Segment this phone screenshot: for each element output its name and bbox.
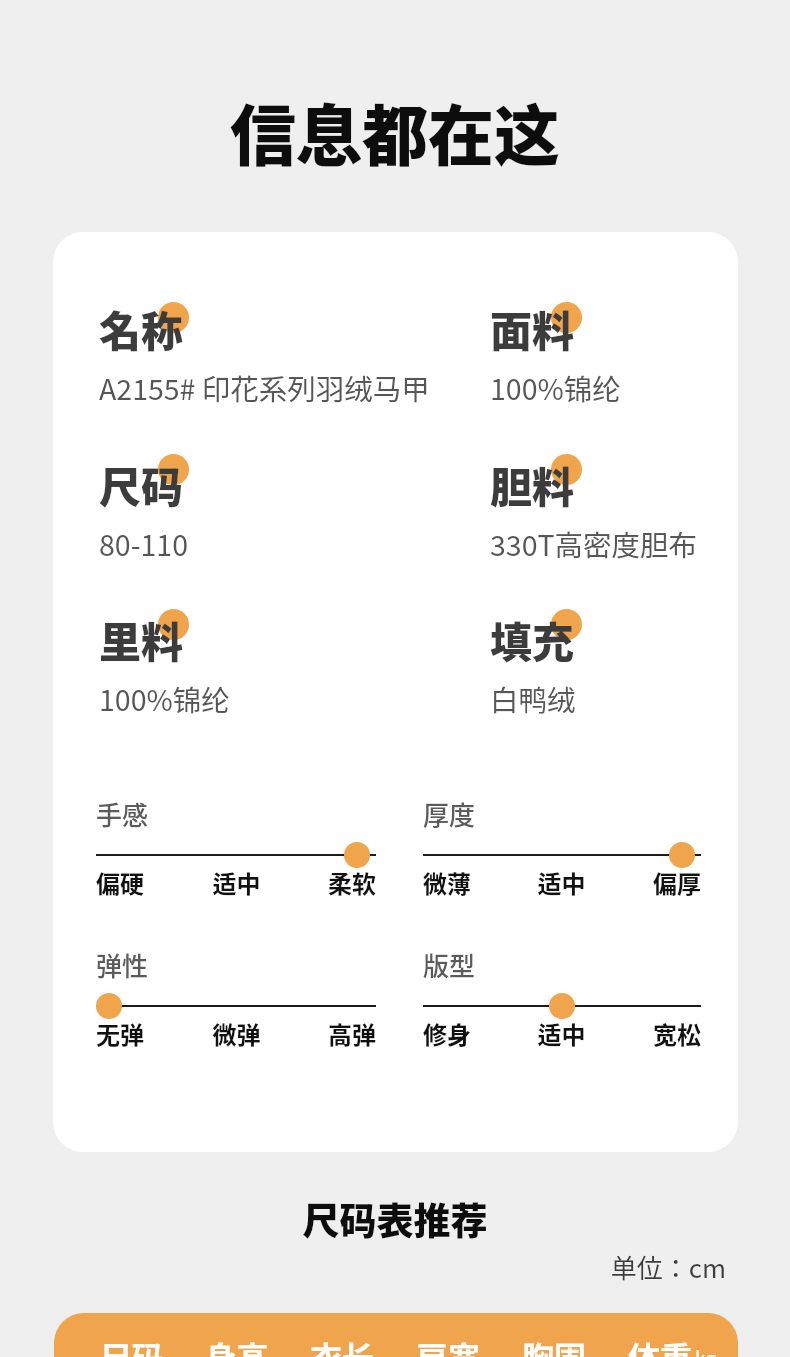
staticText: 适中: [515, 1016, 608, 1051]
staticText: 330T高密度胆布: [490, 523, 698, 564]
staticText: 版型: [423, 946, 476, 984]
staticText: 体重: [607, 1333, 713, 1357]
staticText: kg: [695, 1344, 716, 1357]
staticText: 修身: [423, 1016, 515, 1051]
staticText: 面料: [490, 298, 575, 359]
staticText: 尺码表推荐: [0, 1192, 790, 1246]
button[interactable]: 名称: [99, 298, 467, 406]
button[interactable]: 衣长: [289, 1313, 395, 1357]
staticText: 柔软: [283, 865, 376, 900]
staticText: 100%锦纶: [99, 678, 230, 719]
staticText: 里料: [99, 609, 184, 670]
staticText: 身高: [184, 1333, 289, 1357]
button[interactable]: 里料: [99, 609, 467, 717]
staticText: 名称: [99, 298, 184, 359]
button[interactable]: 体重: [607, 1313, 713, 1357]
button[interactable]: 手感: [96, 795, 376, 891]
staticText: 胆料: [490, 454, 575, 515]
button[interactable]: 弹性: [96, 991, 376, 1021]
staticText: A2155# 印花系列羽绒马甲: [99, 367, 430, 408]
staticText: 尺码: [99, 454, 184, 515]
button[interactable]: 胸围: [501, 1313, 607, 1357]
staticText: 80-110: [99, 523, 188, 564]
button[interactable]: 厚度: [423, 795, 701, 891]
button[interactable]: 身高: [184, 1313, 289, 1357]
staticText: 高弹: [283, 1016, 376, 1051]
staticText: 微薄: [423, 865, 515, 900]
staticText: 手感: [96, 795, 149, 833]
button[interactable]: 肩宽: [395, 1313, 501, 1357]
button[interactable]: 面料: [490, 298, 790, 406]
button[interactable]: 胆料: [490, 454, 790, 562]
staticText: 偏厚: [608, 865, 701, 900]
staticText: 无弹: [96, 1016, 190, 1051]
button[interactable]: 尺码: [99, 454, 467, 562]
staticText: 100%锦纶: [490, 367, 621, 408]
staticText: 宽松: [608, 1016, 701, 1051]
staticText: 白鸭绒: [490, 678, 576, 719]
button[interactable]: 厚度: [423, 840, 701, 870]
staticText: 适中: [190, 865, 283, 900]
staticText: 微弹: [190, 1016, 283, 1051]
staticText: 偏硬: [96, 865, 190, 900]
button[interactable]: 填充: [490, 609, 790, 717]
staticText: 单位：cm: [0, 1248, 726, 1286]
staticText: 信息都在这: [0, 83, 790, 179]
staticText: 衣长: [289, 1333, 395, 1357]
staticText: 弹性: [96, 946, 149, 984]
button[interactable]: 尺码: [79, 1313, 184, 1357]
staticText: 填充: [490, 609, 575, 670]
staticText: 胸围: [501, 1333, 607, 1357]
staticText: 肩宽: [395, 1333, 501, 1357]
button[interactable]: 手感: [96, 840, 376, 870]
staticText: 适中: [515, 865, 608, 900]
button[interactable]: 弹性: [96, 946, 376, 1042]
button[interactable]: 版型: [423, 991, 701, 1021]
button[interactable]: 版型: [423, 946, 701, 1042]
staticText: 厚度: [423, 795, 476, 833]
staticText: 尺码: [79, 1333, 184, 1357]
